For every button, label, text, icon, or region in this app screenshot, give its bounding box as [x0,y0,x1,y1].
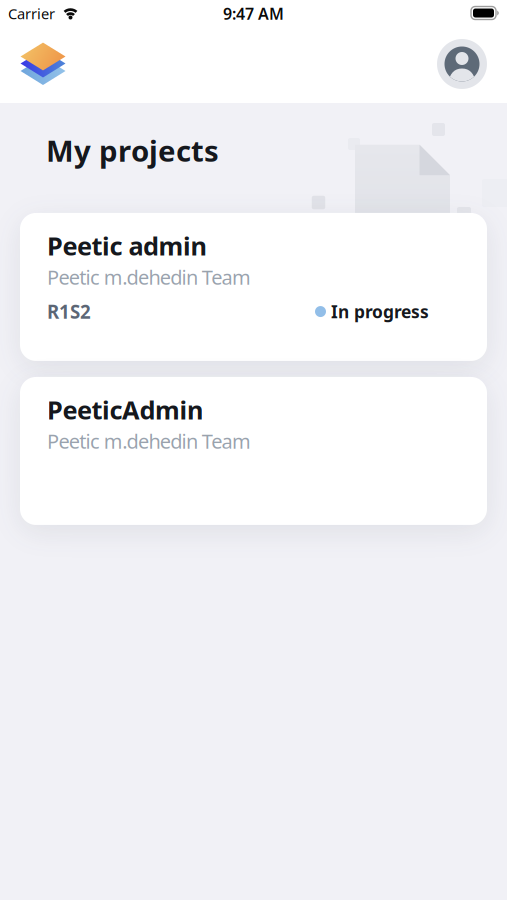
button[interactable]: Profile [437,39,487,89]
staticText: PeeticAdmin [47,393,203,427]
staticText: Peetic m.dehedin Team [47,428,251,454]
button[interactable]: Peetic admin [20,213,487,361]
button[interactable]: PeeticAdmin [20,377,487,525]
staticText: Peetic admin [47,229,206,263]
staticText: My projects [46,131,219,170]
staticText: Carrier [8,4,55,23]
staticText: Peetic m.dehedin Team [47,264,251,290]
staticText: In progress [331,300,429,323]
staticText: 9:47 AM [223,3,284,24]
staticText: R1S2 [47,299,91,324]
